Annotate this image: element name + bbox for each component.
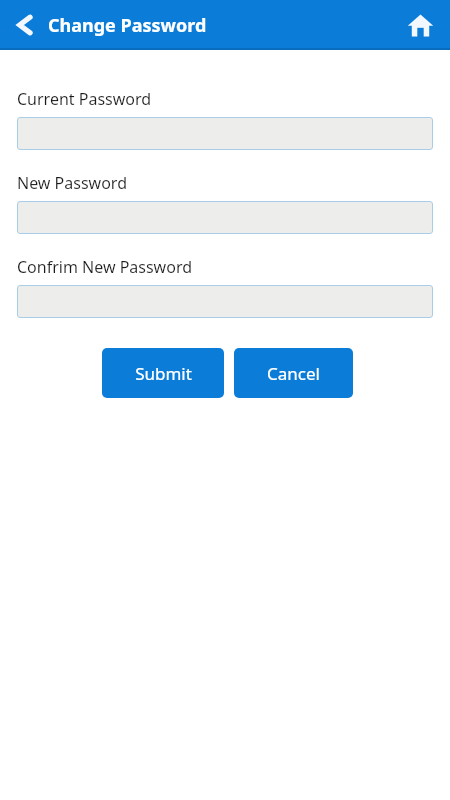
staticText: Change Password [48, 13, 207, 38]
button[interactable]: Cancel [234, 348, 353, 398]
button[interactable] [17, 285, 433, 318]
staticText: New Password [17, 172, 127, 194]
staticText: Current Password [17, 88, 152, 110]
button[interactable] [17, 201, 433, 234]
button[interactable]: Home [403, 8, 437, 42]
staticText: Cancel [267, 362, 320, 385]
staticText: Confrim New Password [17, 256, 193, 278]
button[interactable] [17, 117, 433, 150]
button[interactable]: Submit [102, 348, 224, 398]
staticText: Submit [135, 362, 192, 385]
button[interactable]: Back [10, 8, 44, 42]
